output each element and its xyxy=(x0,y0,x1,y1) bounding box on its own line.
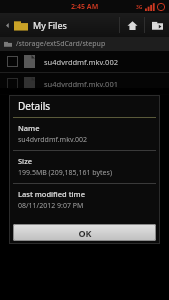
button[interactable]: /storage/extSdCard/stepup xyxy=(0,37,169,51)
staticText: My Files xyxy=(33,19,67,31)
staticText: 199.5MB (209,185,161 bytes) xyxy=(18,168,112,178)
staticText: su4dvrddmf.mkv.001 xyxy=(44,79,118,89)
button[interactable]: Select su4dvrddmf.mkv.002 xyxy=(0,51,169,72)
staticText: /storage/extSdCard/stepup xyxy=(16,39,106,49)
staticText: su4dvrddmf.mkv.002 xyxy=(18,135,88,145)
staticText: Last modified time xyxy=(18,189,86,199)
button[interactable]: Select su4dvrddmf.mkv.002 xyxy=(7,56,18,67)
staticText: OK xyxy=(78,227,92,239)
button[interactable]: Up one level xyxy=(145,13,169,37)
staticText: 2:45 AM xyxy=(71,2,99,12)
button[interactable]: Home xyxy=(120,13,144,37)
button[interactable]: Select su4dvrddmf.mkv.001 xyxy=(0,73,169,94)
staticText: Details xyxy=(18,99,51,113)
button[interactable]: Back xyxy=(0,13,14,37)
staticText: Size xyxy=(18,156,33,166)
staticText: 08/11/2012 9:07 PM xyxy=(18,201,84,211)
staticText: su4dvrddmf.mkv.002 xyxy=(44,57,118,67)
button[interactable]: OK xyxy=(13,224,156,241)
staticText: 3G xyxy=(136,4,143,11)
button[interactable]: Select su4dvrddmf.mkv.001 xyxy=(7,78,18,89)
button[interactable]: My Files xyxy=(14,13,119,37)
staticText: Name xyxy=(18,123,40,133)
